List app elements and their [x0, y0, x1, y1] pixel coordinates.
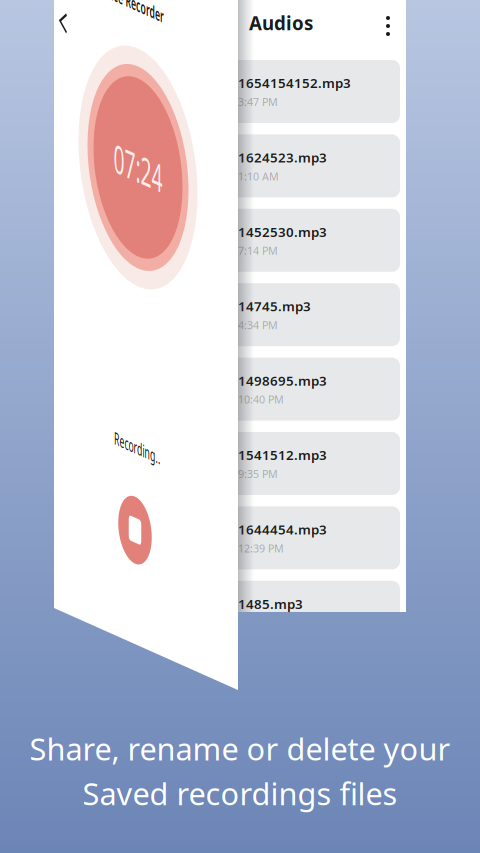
button[interactable]: 1498695.mp3 [226, 358, 400, 421]
staticText: 1624523.mp3 [238, 148, 327, 166]
staticText: 4:34 PM [238, 318, 278, 332]
button[interactable]: 1485.mp3 [226, 581, 400, 644]
staticText: 1654154152.mp3 [238, 74, 351, 92]
staticText: 1452530.mp3 [238, 223, 327, 241]
button[interactable]: 1654154152.mp3 [226, 60, 400, 123]
button[interactable]: 1644454.mp3 [226, 506, 400, 569]
button[interactable]: 14745.mp3 [226, 283, 400, 346]
button[interactable]: 1624523.mp3 [226, 134, 400, 197]
button[interactable]: Audios [249, 6, 439, 40]
staticText: 14745.mp3 [238, 297, 311, 315]
staticText: 10:40 PM [238, 392, 284, 407]
staticText: Share, rename or delete your [29, 728, 450, 769]
staticText: 1498695.mp3 [238, 372, 327, 389]
button[interactable]: More options [377, 12, 399, 40]
staticText: Saved recordings files [82, 773, 397, 814]
staticText: Audios [249, 11, 313, 35]
staticText: 1:10 AM [238, 169, 279, 183]
staticText: 9:35 PM [238, 467, 278, 481]
button[interactable]: 1541512.mp3 [226, 432, 400, 495]
staticText: 1644454.mp3 [238, 520, 327, 538]
staticText: 7:14 PM [238, 244, 278, 258]
button[interactable]: Stop recording [176, 454, 256, 534]
button[interactable]: 1452530.mp3 [226, 209, 400, 272]
staticText: 07:24 [173, 104, 271, 156]
button[interactable]: Back [50, 0, 96, 41]
staticText: 1541512.mp3 [238, 446, 327, 464]
staticText: 3:47 PM [238, 95, 278, 109]
staticText: 12:39 PM [238, 541, 284, 555]
staticText: 1485.mp3 [238, 595, 303, 613]
staticText: Recording.. [174, 399, 267, 422]
